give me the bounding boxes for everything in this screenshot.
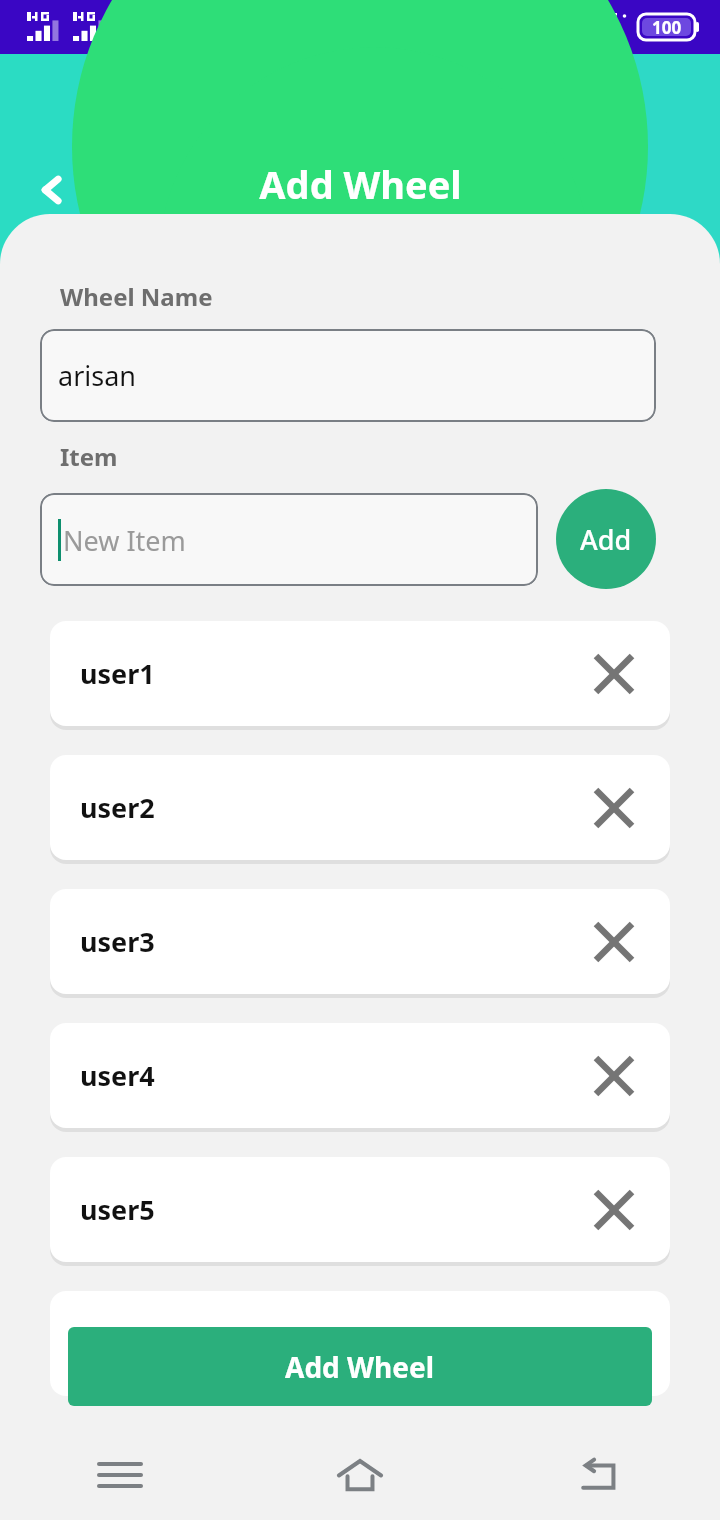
button[interactable]: user2	[50, 755, 670, 860]
button[interactable]: Back	[22, 160, 82, 220]
button[interactable]: Home	[315, 1434, 405, 1520]
button[interactable]: Back	[555, 1434, 645, 1520]
staticText: user3	[80, 923, 155, 960]
staticText: user2	[80, 789, 155, 826]
staticText: Item	[60, 440, 118, 473]
button[interactable]: Remove user2	[586, 780, 642, 836]
button[interactable]: user5	[50, 1157, 670, 1262]
button[interactable]: Remove user1	[586, 646, 642, 702]
staticText: user5	[80, 1191, 155, 1228]
staticText: Wheel Name	[60, 280, 213, 313]
staticText: Add Wheel	[259, 158, 462, 210]
button[interactable]: Remove user5	[586, 1182, 642, 1238]
button[interactable]: user4	[50, 1023, 670, 1128]
button[interactable]: Remove user3	[586, 914, 642, 970]
button[interactable]: user3	[50, 889, 670, 994]
staticText: New Item	[63, 522, 186, 559]
staticText: 100	[652, 16, 682, 39]
button[interactable]: arisan	[40, 329, 656, 422]
button[interactable]: Add Wheel	[68, 1327, 652, 1406]
staticText: user1	[80, 655, 155, 692]
button[interactable]	[50, 1291, 670, 1396]
button[interactable]: New Item	[40, 493, 538, 586]
button[interactable]: Remove user4	[586, 1048, 642, 1104]
button[interactable]: Add	[556, 489, 656, 589]
button[interactable]: Recent apps	[75, 1434, 165, 1520]
staticText: Add	[580, 521, 632, 558]
staticText: Add Wheel	[285, 1348, 435, 1386]
staticText: user4	[80, 1057, 155, 1094]
button[interactable]: user1	[50, 621, 670, 726]
staticText: arisan	[58, 357, 137, 394]
